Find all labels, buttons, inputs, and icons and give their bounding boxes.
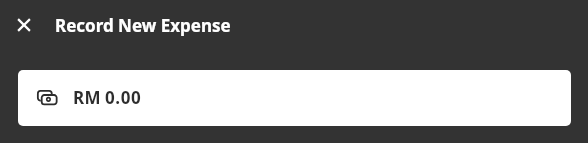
staticText: RM [73,86,101,109]
button[interactable]: RM [18,70,571,126]
staticText: 0.00 [105,86,142,109]
button[interactable]: Close [5,6,42,43]
button[interactable]: Record New Expense [55,14,231,37]
staticText: Record New Expense [55,14,231,37]
